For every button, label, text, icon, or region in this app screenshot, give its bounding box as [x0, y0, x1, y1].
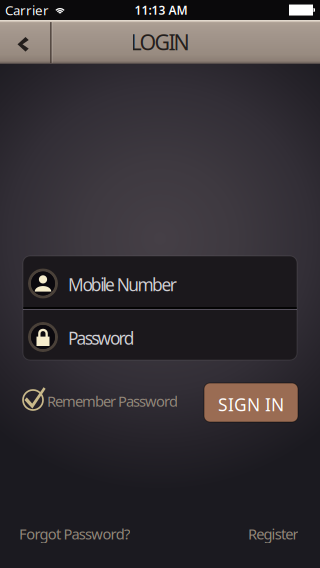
button[interactable]: Register — [248, 524, 298, 543]
staticText: LOGIN — [130, 28, 189, 56]
staticText: SIGN IN — [218, 393, 284, 416]
staticText: Forgot Password? — [19, 524, 130, 543]
button[interactable]: SIGN IN — [204, 383, 298, 422]
button[interactable]: Back — [0, 20, 50, 64]
button[interactable]: Mobile Number — [23, 256, 297, 307]
staticText: Remember Password — [47, 391, 178, 411]
button[interactable]: Password — [23, 310, 297, 360]
staticText: Mobile Number — [68, 273, 177, 296]
staticText: Carrier — [5, 1, 49, 19]
staticText: 11:13 AM — [134, 2, 187, 18]
staticText: Register — [248, 524, 298, 543]
button[interactable]: Remember Password — [23, 384, 183, 412]
staticText: Password — [68, 326, 135, 349]
button[interactable]: Forgot Password? — [19, 524, 130, 543]
